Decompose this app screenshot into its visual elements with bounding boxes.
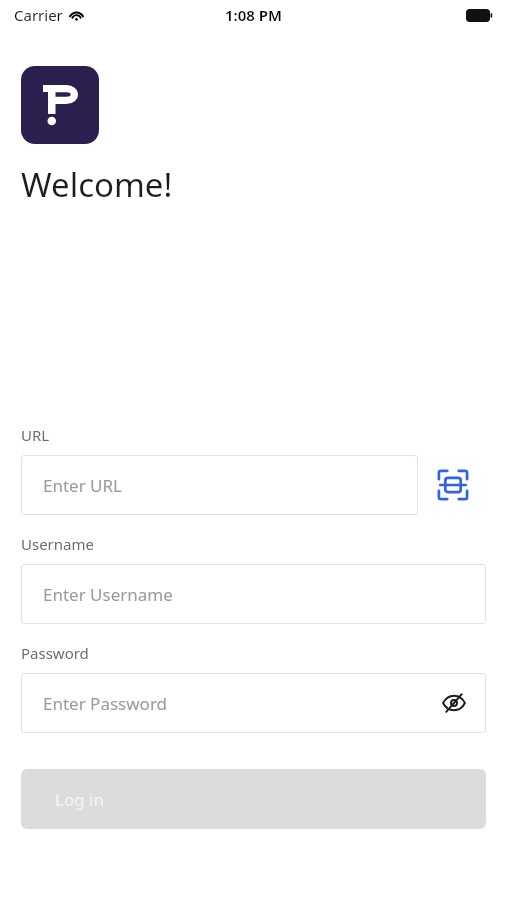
staticText: Enter Username [43, 583, 173, 606]
button[interactable]: Enter URL [21, 455, 418, 515]
staticText: Log in [55, 788, 104, 811]
button[interactable]: Show password [438, 687, 470, 719]
button[interactable]: Scan QR code [436, 468, 470, 502]
staticText: Password [21, 643, 89, 663]
staticText: Welcome! [21, 162, 173, 207]
button[interactable]: Enter Password [21, 673, 486, 733]
staticText: Enter URL [43, 474, 123, 497]
staticText: URL [21, 425, 50, 445]
staticText: Username [21, 534, 94, 554]
button[interactable]: Enter Username [21, 564, 486, 624]
staticText: Carrier [14, 5, 63, 25]
staticText: Enter Password [43, 692, 168, 715]
staticText: 1:08 PM [225, 5, 282, 25]
